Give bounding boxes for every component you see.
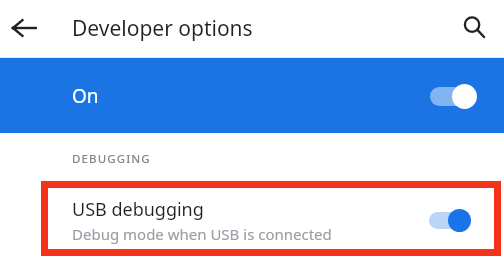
staticText: Developer options — [72, 14, 253, 43]
staticText: USB debugging — [72, 197, 204, 222]
button[interactable]: Back — [0, 4, 48, 52]
staticText: Debug mode when USB is connected — [72, 224, 332, 244]
staticText: On — [72, 83, 99, 109]
button[interactable]: On — [0, 58, 504, 133]
button[interactable]: USB debugging — [0, 180, 504, 259]
button[interactable]: Search — [452, 5, 496, 49]
staticText: DEBUGGING — [72, 151, 151, 167]
